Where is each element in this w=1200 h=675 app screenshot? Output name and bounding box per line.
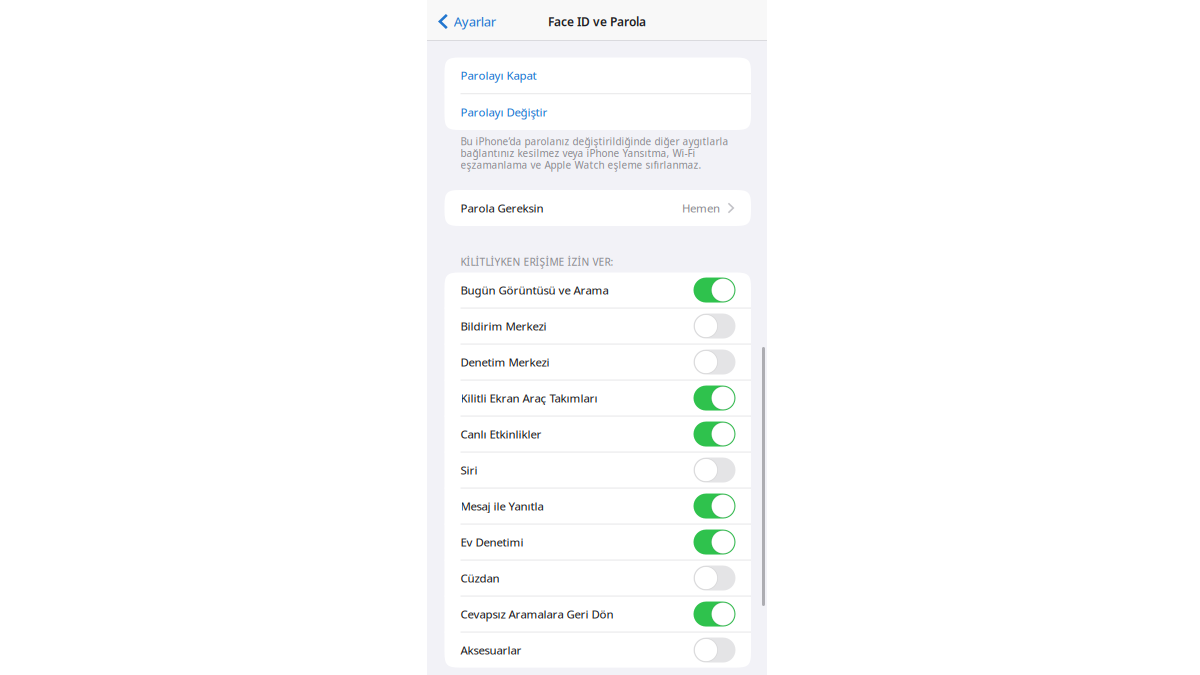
staticText: Ayarlar <box>454 13 496 30</box>
staticText: Cüzdan <box>460 570 499 586</box>
staticText: Bugün Görüntüsü ve Arama <box>460 282 608 298</box>
button[interactable]: Bugün Görüntüsü ve Arama <box>444 272 751 308</box>
button[interactable]: Kilitli Ekran Araç Takımları <box>444 380 751 416</box>
button[interactable]: Cevapsız Aramalara Geri Dön <box>444 596 751 632</box>
button[interactable]: Siri <box>444 452 751 488</box>
staticText: Parola Gereksin <box>460 200 543 215</box>
button[interactable]: Denetim Merkezi <box>444 344 751 380</box>
button[interactable]: Parolayı Kapat <box>444 57 751 93</box>
staticText: Parolayı Kapat <box>460 68 536 83</box>
staticText: Kilitli Ekran Araç Takımları <box>460 390 597 406</box>
staticText: Denetim Merkezi <box>460 354 549 370</box>
staticText: KİLİTLİYKEN ERİŞİME İZİN VER: <box>460 255 613 268</box>
button[interactable]: Canlı Etkinlikler <box>444 416 751 452</box>
staticText: Mesaj ile Yanıtla <box>460 498 543 514</box>
staticText: Canlı Etkinlikler <box>460 426 541 442</box>
staticText: Face ID ve Parola <box>548 14 646 29</box>
staticText: Bildirim Merkezi <box>460 318 546 334</box>
button[interactable]: Bildirim Merkezi <box>444 308 751 344</box>
button[interactable]: Ev Denetimi <box>444 524 751 560</box>
staticText: Hemen <box>682 200 720 215</box>
staticText: Ev Denetimi <box>460 534 523 550</box>
staticText: Aksesuarlar <box>460 642 521 658</box>
staticText: Bu iPhone’da parolanız değiştirildiğinde… <box>460 135 728 171</box>
button[interactable]: Mesaj ile Yanıtla <box>444 488 751 524</box>
button[interactable]: Parola Gereksin <box>444 190 751 226</box>
staticText: Siri <box>460 462 477 478</box>
button[interactable]: Cüzdan <box>444 560 751 596</box>
button[interactable]: Ayarlar <box>427 2 504 40</box>
button[interactable]: Aksesuarlar <box>444 632 751 668</box>
button[interactable]: Parolayı Değiştir <box>444 94 751 130</box>
staticText: Cevapsız Aramalara Geri Dön <box>460 606 613 622</box>
staticText: Parolayı Değiştir <box>460 104 547 120</box>
